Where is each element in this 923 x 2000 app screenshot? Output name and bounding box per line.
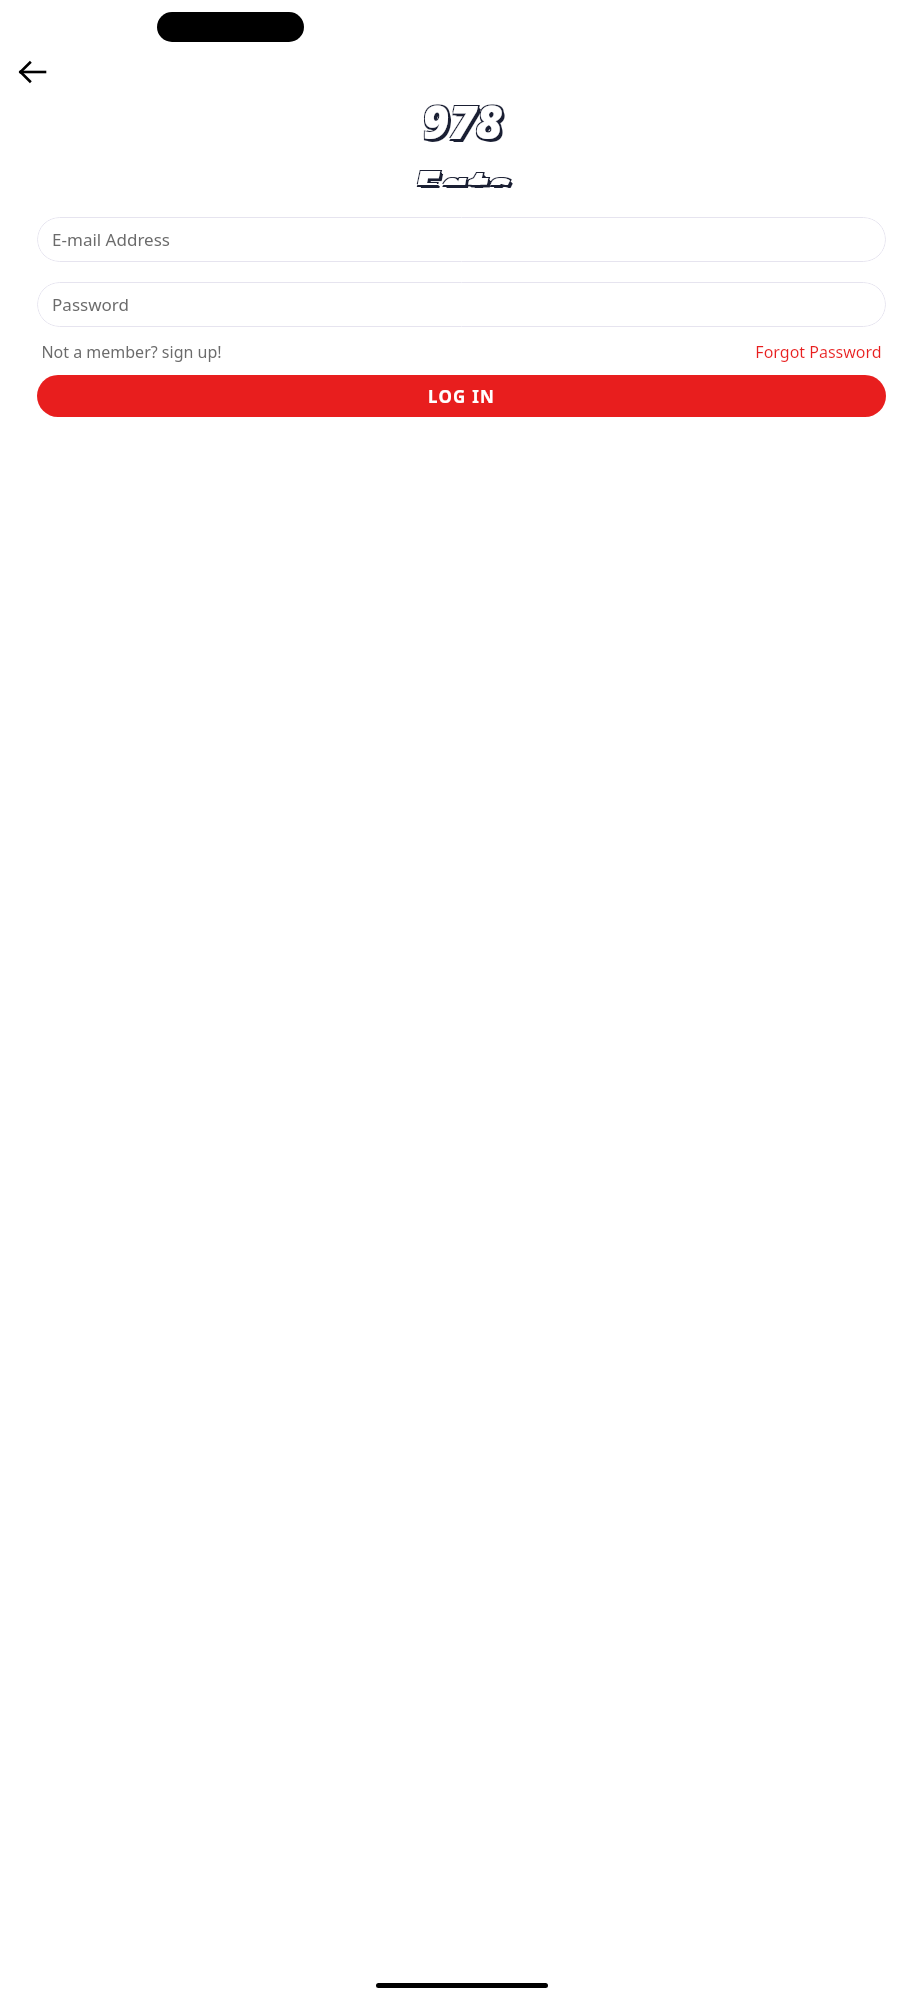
staticText: Eats — [415, 157, 513, 187]
button[interactable]: Password — [37, 282, 886, 327]
staticText: 978 — [424, 92, 505, 155]
button[interactable]: E-mail Address — [37, 217, 886, 262]
staticText: 978 — [421, 92, 502, 155]
staticText: Eats — [413, 155, 511, 185]
staticText: 978 — [421, 89, 502, 152]
staticText: Not a member? sign up! — [41, 341, 222, 363]
staticText: 978 — [424, 89, 505, 152]
button[interactable]: Not a member? sign up! — [37, 337, 226, 367]
staticText: Eats — [412, 154, 510, 184]
staticText: 978 — [422, 90, 503, 153]
staticText: LOG IN — [428, 385, 495, 408]
button[interactable]: LOG IN — [37, 375, 886, 417]
button[interactable]: Forgot Password — [751, 337, 886, 367]
button[interactable]: Back — [8, 48, 56, 96]
staticText: Eats — [412, 157, 510, 187]
staticText: E-mail Address — [52, 228, 170, 251]
staticText: Password — [52, 293, 129, 316]
staticText: 978 — [425, 93, 506, 156]
staticText: Eats — [415, 154, 513, 184]
staticText: Forgot Password — [755, 341, 882, 363]
staticText: Eats — [416, 158, 514, 188]
